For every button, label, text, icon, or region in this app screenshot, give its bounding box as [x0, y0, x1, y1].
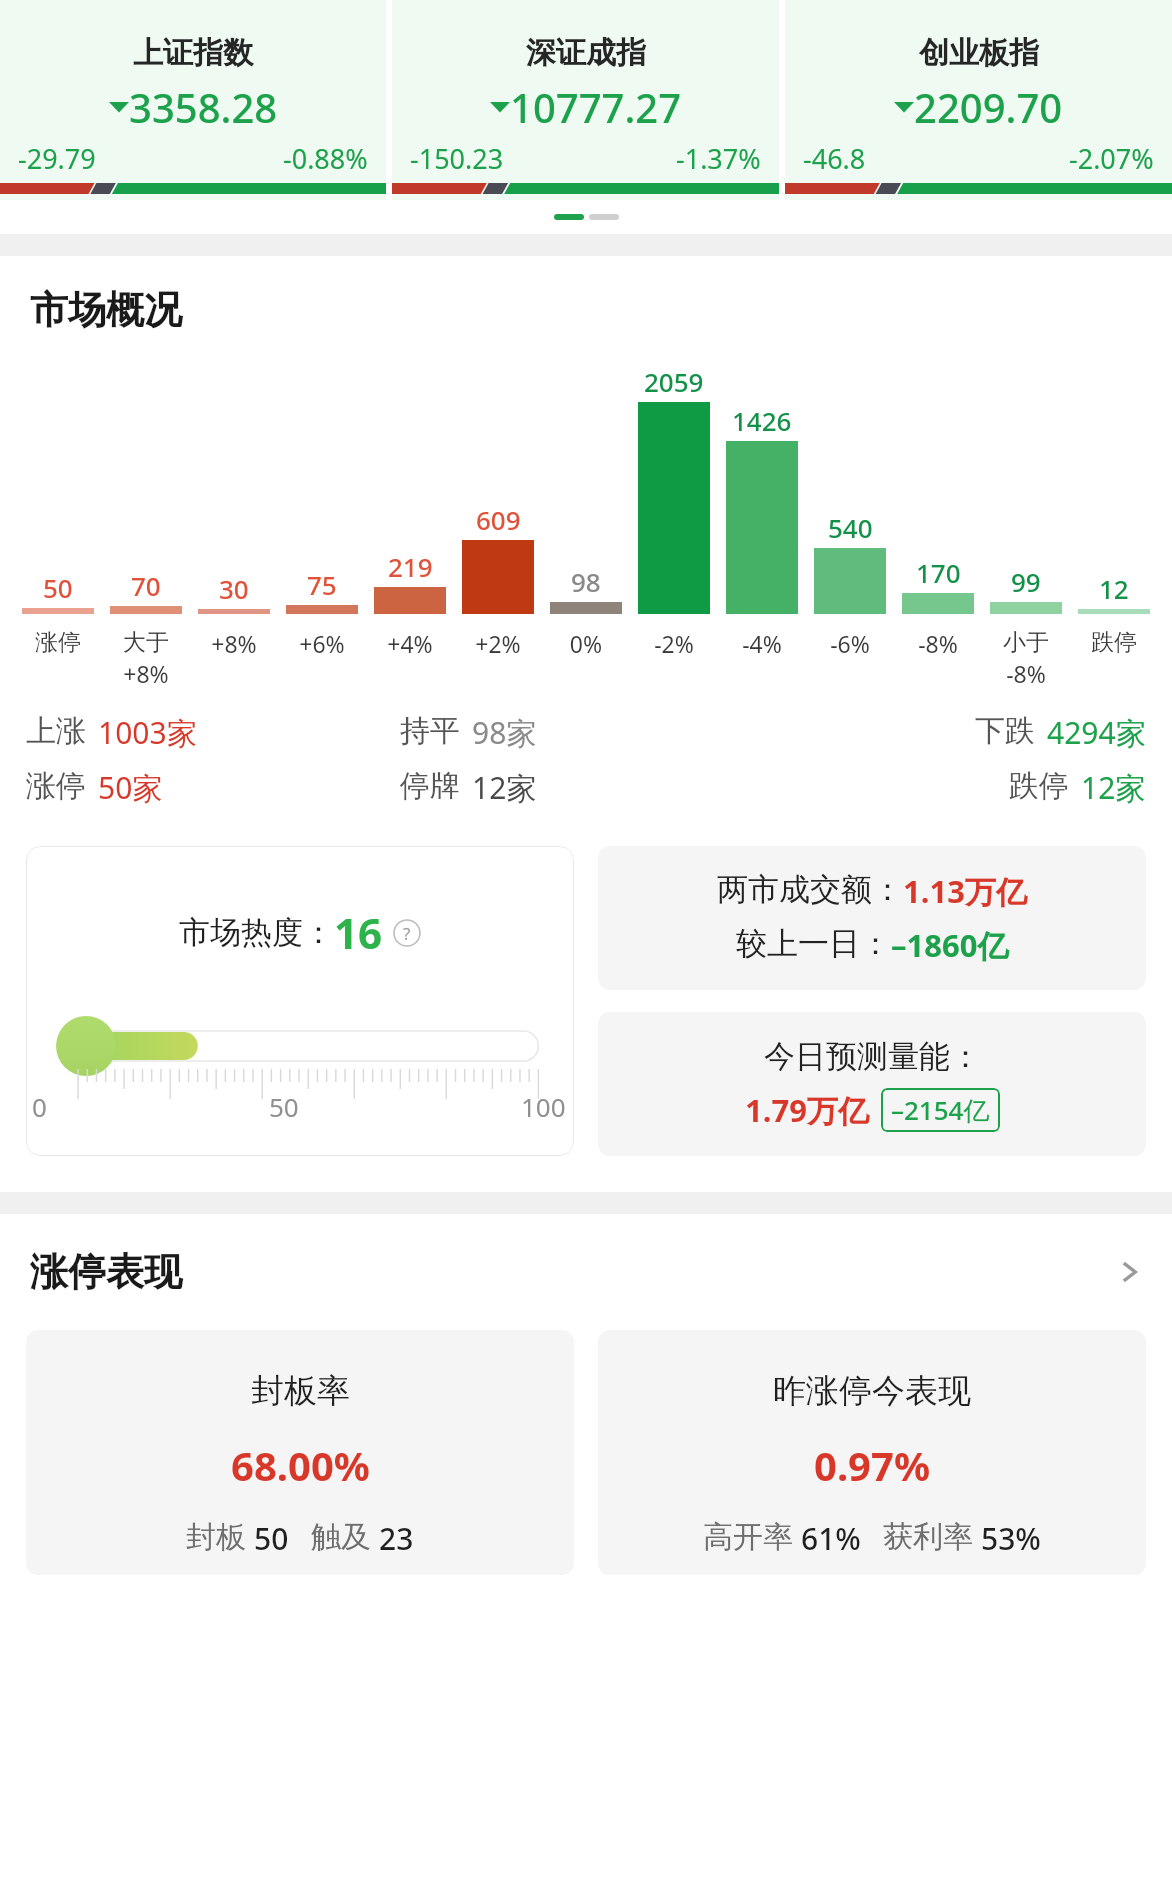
staticText: 今日预测量能： [764, 1037, 981, 1076]
staticText: 0.97% [814, 1438, 930, 1492]
staticText: 上涨 [26, 712, 86, 750]
button[interactable]: 两市成交额： [598, 846, 1146, 990]
staticText: 98家 [472, 712, 537, 753]
staticText: 2059 [644, 364, 704, 399]
staticText: 1426 [732, 403, 792, 438]
staticText: +4% [366, 628, 454, 659]
staticText: 75 [307, 567, 337, 602]
staticText: 大于 +8% [102, 628, 190, 689]
staticText: 609 [476, 502, 521, 537]
staticText: 两市成交额： [717, 870, 903, 909]
staticText: 封板 [186, 1518, 246, 1556]
staticText: 封板率 [251, 1370, 350, 1412]
button[interactable]: 上证指数 [0, 0, 386, 200]
staticText: 70 [131, 568, 161, 603]
staticText: 创业板指 [919, 34, 1039, 72]
button[interactable]: 涨停表现 [0, 1242, 1172, 1302]
staticText: 30 [219, 571, 249, 606]
staticText: 53% [981, 1518, 1041, 1559]
staticText: 50家 [98, 767, 163, 808]
staticText: 获利率 [883, 1518, 973, 1556]
staticText: 12家 [472, 767, 537, 808]
staticText: 3358.28 [129, 80, 278, 134]
staticText: 99 [1011, 564, 1041, 599]
staticText: 68.00% [231, 1438, 370, 1492]
staticText: +8% [190, 628, 278, 659]
staticText: +6% [278, 628, 366, 659]
staticText: -46.8 [803, 140, 866, 177]
staticText: 0% [542, 628, 630, 659]
staticText: 23 [379, 1518, 414, 1559]
staticText: -8% [894, 628, 982, 659]
button[interactable]: 深证成指 [392, 0, 779, 200]
staticText: –1860亿 [891, 924, 1009, 966]
staticText: 12家 [1081, 767, 1146, 808]
staticText: 50 [269, 1089, 299, 1124]
button[interactable]: 市场热度： [26, 846, 574, 1156]
staticText: -2.07% [1069, 140, 1154, 177]
staticText: -0.88% [283, 140, 368, 177]
other: 查看更多 [1116, 1259, 1142, 1285]
staticText: 触及 [311, 1518, 371, 1556]
staticText: -29.79 [18, 140, 96, 177]
staticText: 50 [43, 570, 73, 605]
staticText: 540 [828, 510, 873, 545]
staticText: 1.79万亿 [745, 1089, 869, 1131]
staticText: +2% [454, 628, 542, 659]
staticText: 12 [1099, 571, 1129, 606]
staticText: -6% [806, 628, 894, 659]
staticText: 4294家 [1047, 712, 1146, 753]
staticText: 涨停表现 [30, 1248, 182, 1296]
staticText: 深证成指 [526, 34, 646, 72]
staticText: 持平 [400, 712, 460, 750]
button[interactable]: 封板率 [26, 1330, 574, 1575]
staticText: 涨停 [14, 628, 102, 657]
button[interactable]: 创业板指 [785, 0, 1172, 200]
staticText: 100 [521, 1089, 566, 1124]
staticText: –2154亿 [891, 1092, 990, 1128]
staticText: 98 [571, 564, 601, 599]
staticText: 10777.27 [510, 80, 682, 134]
staticText: 停牌 [400, 767, 460, 805]
staticText: 市场概况 [30, 286, 182, 334]
staticText: 下跌 [975, 712, 1035, 750]
staticText: 2209.70 [914, 80, 1063, 134]
staticText: 219 [388, 549, 433, 584]
staticText: 涨停 [26, 767, 86, 805]
staticText: 1003家 [98, 712, 197, 753]
staticText: 50 [254, 1518, 289, 1559]
button[interactable]: 今日预测量能： [598, 1012, 1146, 1156]
staticText: 小于 -8% [982, 628, 1070, 689]
staticText: 16 [334, 904, 383, 961]
button[interactable]: 昨涨停今表现 [598, 1330, 1146, 1575]
staticText: 1.13万亿 [903, 870, 1027, 912]
staticText: 昨涨停今表现 [773, 1370, 971, 1412]
staticText: 高开率 [703, 1518, 793, 1556]
staticText: ? [403, 922, 411, 945]
staticText: -2% [630, 628, 718, 659]
staticText: -150.23 [410, 140, 504, 177]
staticText: 61% [801, 1518, 861, 1559]
staticText: 市场热度： [179, 913, 334, 952]
staticText: 上证指数 [133, 34, 253, 72]
staticText: 0 [32, 1089, 47, 1124]
staticText: 较上一日： [736, 924, 891, 963]
staticText: -1.37% [676, 140, 761, 177]
staticText: -4% [718, 628, 806, 659]
staticText: 跌停 [1009, 767, 1069, 805]
staticText: 跌停 [1070, 628, 1158, 657]
button[interactable]: 说明 [393, 919, 421, 947]
staticText: 170 [916, 555, 961, 590]
